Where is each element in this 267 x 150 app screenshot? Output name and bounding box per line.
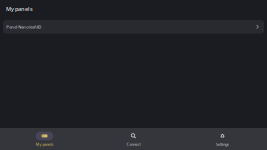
- staticText: Panel Nanoleaf 4D: [6, 24, 41, 30]
- staticText: Connect: [126, 141, 140, 147]
- button[interactable]: Settings: [178, 128, 267, 150]
- staticText: Settings: [216, 141, 229, 147]
- button[interactable]: My panels: [0, 128, 89, 150]
- staticText: My panels: [35, 141, 53, 147]
- button[interactable]: Panel Nanoleaf 4D: [3, 20, 264, 33]
- staticText: My panels: [6, 5, 33, 13]
- button[interactable]: Connect: [89, 128, 178, 150]
